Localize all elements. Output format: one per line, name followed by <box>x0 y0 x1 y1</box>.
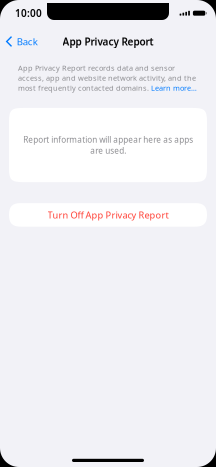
staticText: App Privacy Report <box>62 35 153 48</box>
button[interactable]: Turn Off App Privacy Report <box>0 203 216 227</box>
staticText: Turn Off App Privacy Report <box>47 209 168 221</box>
staticText: Report information will appear here as a… <box>23 134 193 156</box>
staticText: Back <box>17 35 38 48</box>
staticText: 10:00 <box>15 6 42 20</box>
button[interactable]: Back <box>0 32 44 51</box>
staticText: App Privacy Report records data and sens… <box>18 63 197 93</box>
